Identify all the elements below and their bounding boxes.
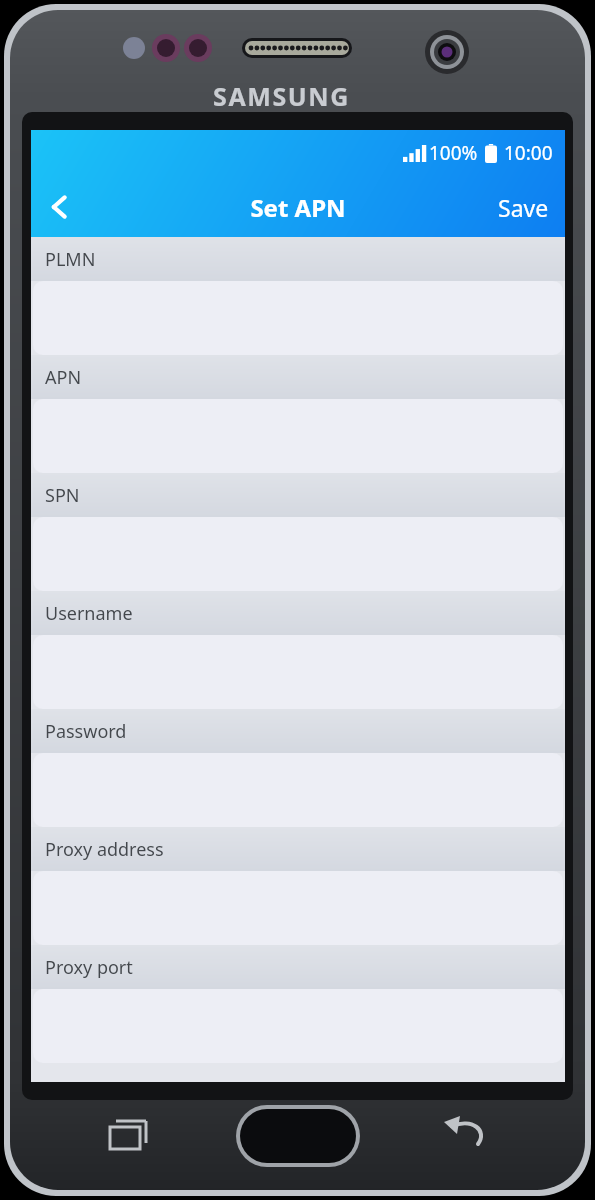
button[interactable]: Back	[31, 178, 89, 236]
staticText: 10:00	[504, 140, 553, 166]
staticText: Save	[498, 192, 549, 223]
staticText: SAMSUNG	[213, 79, 350, 113]
staticText: Username	[45, 601, 133, 626]
staticText: Password	[45, 719, 127, 744]
button[interactable]: Save	[482, 182, 565, 233]
staticText: APN	[45, 365, 82, 390]
staticText: Proxy port	[45, 955, 133, 980]
staticText: SPN	[45, 483, 80, 508]
staticText: PLMN	[45, 247, 96, 272]
staticText: 100%	[429, 140, 478, 166]
staticText: Proxy address	[45, 837, 164, 862]
staticText: Set APN	[250, 191, 346, 224]
